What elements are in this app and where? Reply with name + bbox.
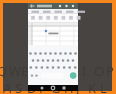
staticText: H bbox=[64, 79, 74, 94]
staticText: U bbox=[70, 62, 80, 80]
staticText: S bbox=[15, 79, 23, 94]
staticText: K bbox=[88, 79, 97, 94]
staticText: F bbox=[39, 79, 46, 94]
other: Navigation bar bbox=[28, 85, 78, 91]
staticText: E bbox=[21, 62, 29, 80]
staticText: P bbox=[106, 62, 114, 80]
staticText: G bbox=[51, 79, 61, 94]
staticText: R bbox=[33, 62, 42, 80]
staticText: D bbox=[27, 79, 37, 94]
staticText: L bbox=[100, 79, 107, 94]
staticText: A bbox=[3, 79, 12, 94]
button[interactable] bbox=[28, 23, 78, 45]
staticText: Q bbox=[0, 62, 8, 80]
button[interactable] bbox=[28, 9, 78, 14]
staticText: T bbox=[45, 62, 53, 80]
button[interactable] bbox=[28, 3, 78, 9]
staticText: Y bbox=[58, 62, 66, 80]
staticText: J bbox=[76, 79, 80, 94]
